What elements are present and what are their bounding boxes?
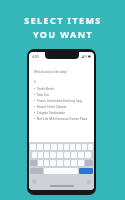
button[interactable]: Key [71, 152, 77, 158]
button[interactable]: Key [32, 152, 37, 158]
button[interactable]: Key [51, 144, 57, 150]
button[interactable]: Key [57, 160, 63, 166]
staticText: • Colgate Toothpaste [34, 111, 65, 115]
button[interactable]: Key [44, 152, 49, 158]
button[interactable]: Key [64, 152, 70, 158]
button[interactable]: Key [88, 144, 93, 150]
staticText: • Harpic Toilet Cleaner [34, 105, 67, 109]
button[interactable]: Key [38, 160, 43, 166]
button[interactable]: Key [50, 160, 56, 166]
button[interactable]: Key [44, 160, 49, 166]
button[interactable]: Key [76, 144, 81, 150]
button[interactable]: Key [64, 160, 70, 166]
button[interactable]: • Tissue Lemonette Ketchup 5pg [34, 99, 94, 105]
button[interactable]: Key [78, 160, 84, 166]
staticText: 4:05 [32, 54, 40, 59]
button[interactable]: Key [50, 152, 56, 158]
button[interactable]: Key [30, 144, 36, 150]
button[interactable]: Key [38, 152, 43, 158]
button[interactable]: Key [44, 144, 50, 150]
staticText: SELECT ITEMS [24, 14, 102, 26]
button[interactable]: Key [82, 144, 87, 150]
staticText: • Nirf Lite Mini Samosa Cheese Pizza Rea… [34, 117, 94, 121]
button[interactable]: Key [78, 152, 84, 158]
button[interactable]: Key [64, 144, 69, 150]
button[interactable]: Search [79, 168, 93, 174]
button[interactable]: • Harpic Toilet Cleaner [34, 105, 94, 111]
button[interactable]: Microphone [87, 180, 91, 184]
button[interactable]: • Tata Tea [34, 93, 94, 99]
button[interactable]: • Colgate Toothpaste [34, 111, 94, 117]
button[interactable]: Key [70, 144, 75, 150]
button[interactable]: Key [58, 144, 63, 150]
staticText: YOU WANT [33, 28, 93, 40]
staticText: • Tissue Lemonette Ketchup 5pg [34, 99, 82, 103]
button[interactable]: Emoji [32, 179, 37, 184]
staticText: • Tooth Brush [34, 87, 55, 91]
button[interactable]: Key [71, 160, 77, 166]
staticText: What would you like today? [34, 70, 68, 74]
button[interactable]: • Nirf Lite Mini Samosa Cheese Pizza Rea… [34, 117, 94, 123]
button[interactable]: Key [57, 152, 63, 158]
button[interactable]: Key [85, 152, 91, 158]
button[interactable]: • Tooth Brush [34, 87, 94, 93]
staticText: • Tata Tea [34, 93, 49, 97]
button[interactable]: Key [37, 144, 43, 150]
